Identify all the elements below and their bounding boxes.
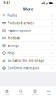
staticText: More [23, 6, 33, 12]
staticText: 9:41 [3, 1, 10, 5]
staticText: Help [7, 51, 14, 55]
staticText: Products & services [7, 21, 33, 25]
button[interactable]: Confirm to new region [0, 64, 56, 72]
staticText: More [47, 93, 51, 95]
staticText: Search [18, 93, 24, 95]
staticText: Go back to the old design [7, 59, 44, 62]
button[interactable]: Home [0, 89, 14, 95]
staticText: Profile [7, 14, 17, 17]
button[interactable]: Go back to the old design [0, 57, 56, 64]
button[interactable]: Settings [0, 42, 56, 49]
button[interactable]: Help [0, 49, 56, 57]
staticText: Settings [7, 44, 18, 47]
button[interactable]: Orders [28, 89, 42, 95]
staticText: Feedback [7, 36, 19, 40]
staticText: Orders [32, 93, 38, 95]
staticText: Payment options [7, 29, 30, 32]
button[interactable]: Profile [0, 12, 56, 19]
staticText: Confirm to new region [7, 66, 39, 70]
staticText: Home [5, 93, 9, 95]
button[interactable]: Payment options [0, 27, 56, 34]
button[interactable]: More [42, 89, 56, 95]
button[interactable]: Search [14, 89, 28, 95]
button[interactable]: Feedback [0, 34, 56, 42]
button[interactable]: Products & services [0, 19, 56, 27]
